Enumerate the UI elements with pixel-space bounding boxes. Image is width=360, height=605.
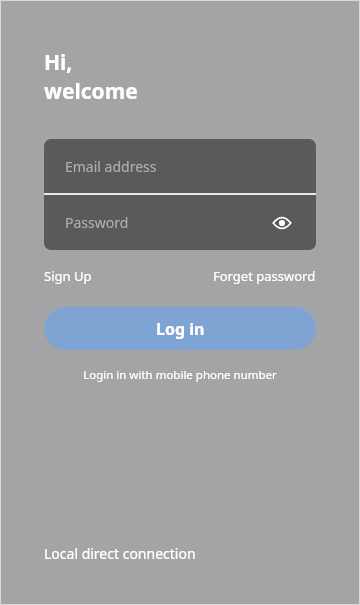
staticText: Password: [65, 213, 269, 232]
staticText: Email address: [65, 157, 157, 176]
staticText: Sign Up: [44, 267, 92, 285]
staticText: welcome: [44, 77, 138, 106]
staticText: Local direct connection: [44, 544, 196, 563]
staticText: Hi,: [44, 48, 73, 77]
button[interactable]: Login in with mobile phone number: [0, 367, 360, 383]
staticText: Login in with mobile phone number: [83, 367, 277, 383]
button[interactable]: Show password: [269, 210, 295, 236]
button[interactable]: Forget password: [213, 267, 316, 285]
staticText: Log in: [156, 318, 205, 340]
staticText: Forget password: [213, 267, 316, 285]
button[interactable]: Sign Up: [44, 267, 92, 285]
button[interactable]: Log in: [44, 307, 316, 350]
button[interactable]: Local direct connection: [44, 544, 196, 563]
button[interactable]: Email address: [44, 139, 316, 193]
button[interactable]: Password: [44, 195, 316, 250]
